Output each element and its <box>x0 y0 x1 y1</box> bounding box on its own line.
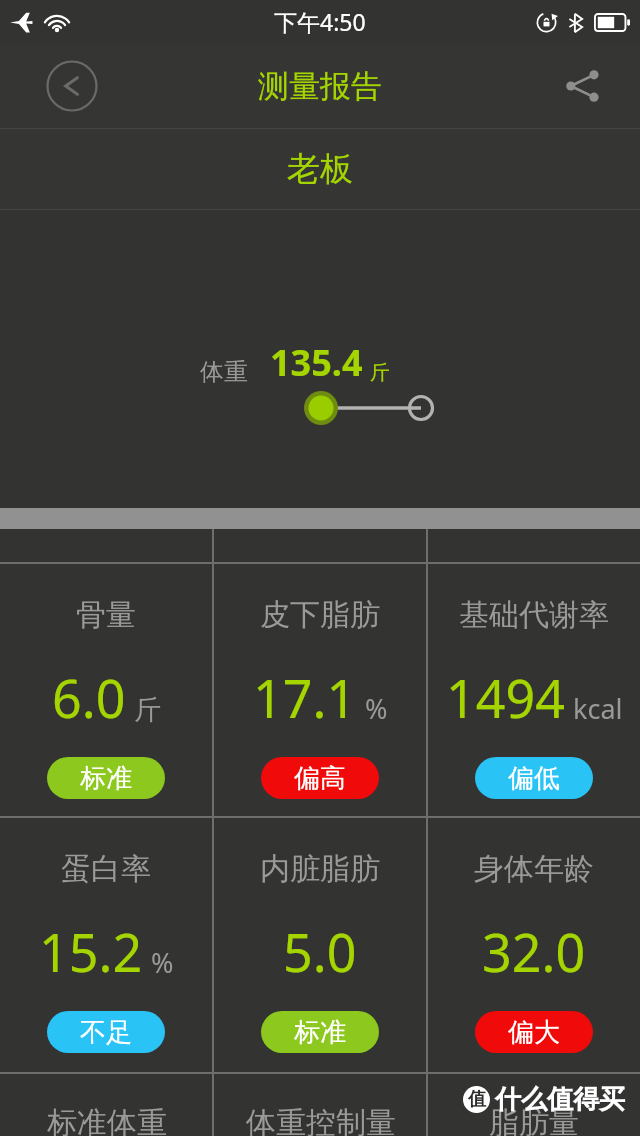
staticText: 5.0 <box>283 916 357 987</box>
button[interactable]: 偏低 <box>475 757 593 799</box>
staticText: 1494 <box>446 662 565 733</box>
staticText: 斤 <box>134 693 161 727</box>
staticText: 老板 <box>287 148 353 190</box>
staticText: 标准体重 <box>47 1104 167 1136</box>
button[interactable]: 老板 <box>0 129 640 209</box>
staticText: 值 <box>468 1088 486 1111</box>
staticText: 偏大 <box>508 1016 560 1049</box>
button[interactable]: 基础代谢率 <box>428 564 640 816</box>
staticText: 偏低 <box>508 762 560 795</box>
staticText: 斤 <box>370 360 390 385</box>
button[interactable]: 身体年龄 <box>428 818 640 1072</box>
button[interactable]: 皮下脂肪 <box>214 564 426 816</box>
button[interactable]: 不足 <box>47 1011 165 1053</box>
button[interactable]: 蛋白率 <box>0 818 212 1072</box>
staticText: 下午4:50 <box>274 6 366 37</box>
staticText: 标准 <box>294 1016 346 1049</box>
staticText: 内脏脂肪 <box>260 850 380 888</box>
staticText: 体重控制量 <box>246 1104 396 1136</box>
staticText: 17.1 <box>253 662 357 733</box>
button[interactable]: 脂肪量 <box>427 1074 640 1136</box>
staticText: % <box>151 944 174 981</box>
staticText: 135.4 <box>270 338 363 387</box>
button[interactable]: Weight slider <box>295 386 445 430</box>
button[interactable]: 骨量 <box>0 564 212 816</box>
button[interactable]: 体重控制量 <box>214 1074 427 1136</box>
staticText: kcal <box>573 690 623 727</box>
staticText: 偏高 <box>294 762 346 795</box>
staticText: 标准 <box>80 762 132 795</box>
staticText: 6.0 <box>52 662 126 733</box>
staticText: 不足 <box>80 1016 132 1049</box>
staticText: 脂肪量 <box>489 1104 579 1136</box>
button[interactable]: 标准体重 <box>0 1074 214 1136</box>
button[interactable]: 内脏脂肪 <box>214 818 426 1072</box>
staticText: 体重 <box>200 357 248 387</box>
staticText: 骨量 <box>76 596 136 634</box>
staticText: % <box>365 690 388 727</box>
button[interactable]: Back <box>44 58 100 114</box>
staticText: 测量报告 <box>258 67 382 106</box>
staticText: 皮下脂肪 <box>260 596 380 634</box>
button[interactable]: 标准 <box>47 757 165 799</box>
button[interactable]: 标准 <box>261 1011 379 1053</box>
staticText: 蛋白率 <box>61 850 151 888</box>
button[interactable]: Share <box>554 58 610 114</box>
staticText: 32.0 <box>482 916 586 987</box>
staticText: 基础代谢率 <box>459 596 609 634</box>
staticText: 15.2 <box>39 916 143 987</box>
button[interactable]: 偏高 <box>261 757 379 799</box>
button[interactable]: 偏大 <box>475 1011 593 1053</box>
staticText: 什么值得买 <box>495 1083 625 1116</box>
staticText: 身体年龄 <box>474 850 594 888</box>
